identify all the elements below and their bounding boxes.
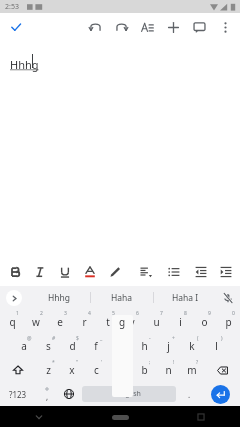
button[interactable]: r [72, 309, 96, 334]
staticText: h [141, 339, 148, 353]
staticText: 3 [64, 310, 67, 317]
button[interactable]: Formatting [134, 14, 160, 40]
staticText: - [149, 335, 151, 342]
button[interactable]: x [60, 358, 84, 382]
staticText: a [21, 339, 27, 353]
staticText: w [32, 315, 40, 329]
button[interactable]: e [48, 309, 72, 334]
button[interactable]: d [60, 334, 84, 358]
staticText: o [201, 315, 208, 329]
button[interactable]: w [24, 309, 48, 334]
staticText: y [129, 315, 135, 329]
button[interactable]: Period [178, 382, 200, 406]
staticText: n [165, 363, 172, 377]
button[interactable]: Recent apps [190, 406, 212, 427]
staticText: , [46, 391, 49, 402]
button[interactable]: List [161, 258, 186, 286]
button[interactable]: j [156, 334, 180, 358]
staticText: x [69, 363, 75, 377]
staticText: d [69, 339, 76, 353]
button[interactable]: k [180, 334, 204, 358]
button[interactable]: Haha [91, 286, 153, 309]
staticText: f [94, 339, 98, 353]
staticText: z [46, 363, 51, 377]
button[interactable]: Comma [36, 382, 58, 406]
staticText: @ [27, 335, 32, 342]
button[interactable]: Voice input off [216, 286, 240, 309]
button[interactable]: Change language [58, 382, 80, 406]
button[interactable]: a [12, 334, 36, 358]
staticText: 4 [88, 310, 91, 317]
button[interactable]: Hide keyboard [28, 406, 50, 427]
staticText: c [94, 363, 99, 377]
staticText: j [167, 339, 170, 353]
button[interactable]: c [84, 358, 108, 382]
button[interactable]: Shift [0, 358, 36, 382]
button[interactable]: f [84, 334, 108, 358]
button[interactable]: Highlight [102, 258, 127, 286]
button[interactable]: l [204, 334, 228, 358]
staticText: Haha [111, 292, 133, 304]
button[interactable]: Haha I [154, 286, 216, 309]
staticText: 2 [40, 310, 43, 317]
button[interactable]: q [0, 309, 24, 334]
button[interactable]: Decrease indent [188, 258, 213, 286]
button[interactable]: y [120, 309, 144, 334]
button[interactable]: Undo [82, 14, 108, 40]
button[interactable]: Backspace [204, 358, 240, 382]
button[interactable]: s [36, 334, 60, 358]
button[interactable]: Home [107, 409, 133, 425]
button[interactable]: t [96, 309, 120, 334]
button[interactable]: Insert [160, 14, 186, 40]
button[interactable]: m [180, 358, 204, 382]
staticText: 8 [184, 310, 187, 317]
staticText: 5 [112, 310, 115, 317]
button[interactable]: Increase indent [213, 258, 238, 286]
button[interactable]: Enter [211, 385, 230, 404]
staticText: t [106, 315, 110, 329]
button[interactable]: Redo [108, 14, 134, 40]
staticText: 0 [232, 310, 235, 317]
button[interactable]: o [192, 309, 216, 334]
staticText: p [225, 315, 232, 329]
staticText: 9 [208, 310, 211, 317]
button[interactable]: Hhhg [28, 286, 90, 309]
button[interactable]: Underline [52, 258, 77, 286]
button[interactable]: Done [4, 15, 28, 39]
button[interactable]: h [132, 334, 156, 358]
staticText: $ [76, 335, 79, 342]
button[interactable]: Text color [77, 258, 102, 286]
button[interactable]: Bold [2, 258, 27, 286]
staticText: q [9, 315, 16, 329]
staticText: g [119, 315, 126, 329]
button[interactable]: Comment [186, 14, 212, 40]
staticText: 6 [136, 310, 139, 317]
staticText: . [188, 389, 191, 400]
button[interactable]: n [156, 358, 180, 382]
staticText: k [189, 339, 195, 353]
staticText: s [46, 339, 51, 353]
button[interactable]: Alignment [133, 258, 158, 286]
button[interactable]: z [36, 358, 60, 382]
button[interactable]: b [132, 358, 156, 382]
button[interactable]: More options [212, 14, 238, 40]
staticText: m [187, 363, 197, 377]
button[interactable]: English [82, 386, 176, 402]
button[interactable]: u [144, 309, 168, 334]
button[interactable]: Expand toolbar [0, 286, 28, 309]
staticText: ? [196, 359, 199, 366]
staticText: English [117, 389, 141, 399]
staticText: ?123 [9, 389, 27, 400]
button[interactable]: i [168, 309, 192, 334]
staticText: r [82, 315, 87, 329]
button[interactable]: p [216, 309, 240, 334]
staticText: ( [197, 335, 199, 342]
staticText: " [76, 359, 79, 366]
button[interactable]: Italic [27, 258, 52, 286]
button[interactable]: ?123 [0, 382, 36, 406]
